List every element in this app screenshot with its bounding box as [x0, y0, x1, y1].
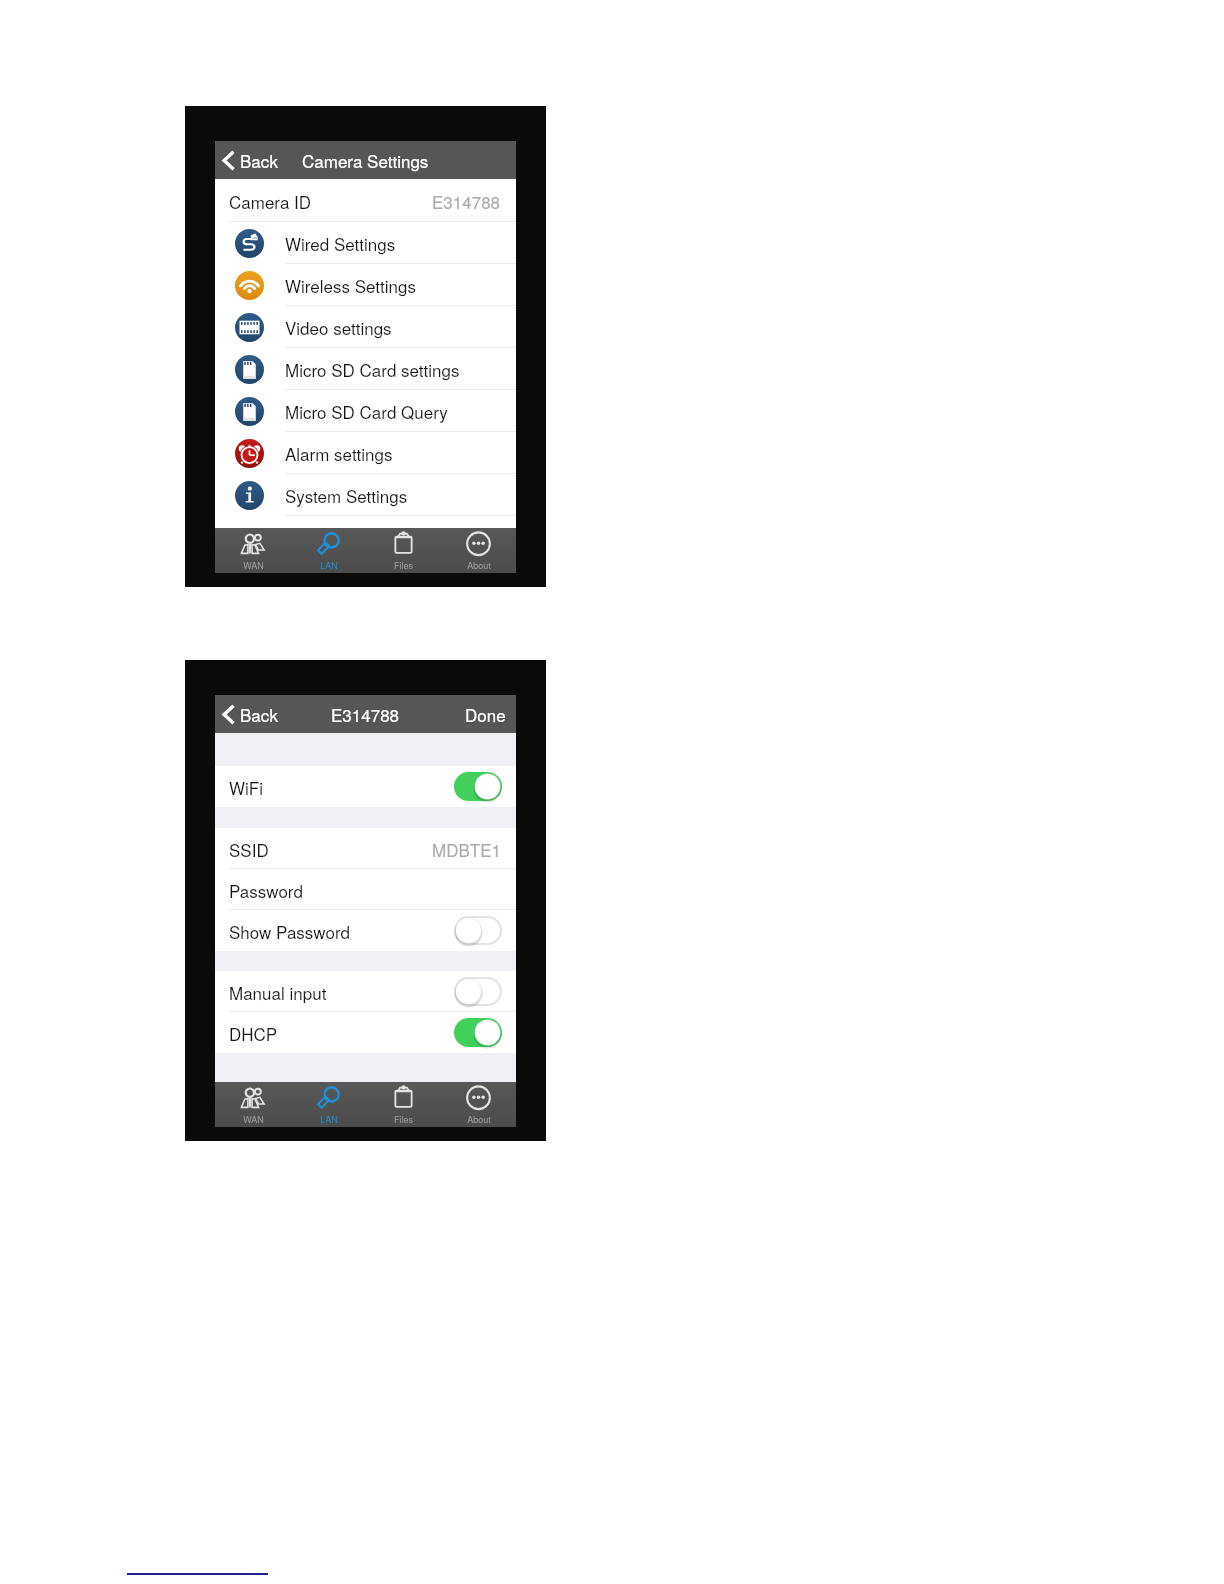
staticText: MDBTE1: [432, 837, 501, 861]
staticText: About: [467, 1113, 491, 1126]
button[interactable]: WAN: [215, 528, 291, 573]
button[interactable]: Video settings: [215, 306, 516, 348]
button[interactable]: Alarm settings: [215, 432, 516, 474]
button[interactable]: About: [441, 528, 516, 573]
staticText: Back: [240, 148, 278, 172]
button[interactable]: LAN: [291, 1082, 366, 1127]
button[interactable]: Done: [455, 696, 516, 732]
staticText: Camera ID: [229, 189, 312, 213]
button[interactable]: SSID: [215, 828, 516, 869]
other: On: [454, 772, 502, 801]
button[interactable]: Manual input: [215, 971, 516, 1012]
staticText: Manual input: [229, 980, 327, 1004]
staticText: Video settings: [285, 315, 392, 339]
button[interactable]: DHCP: [215, 1012, 516, 1053]
staticText: About: [467, 559, 491, 572]
button[interactable]: Back: [215, 697, 286, 731]
button[interactable]: LAN: [291, 528, 366, 573]
other: About: [466, 532, 492, 557]
staticText: WAN: [243, 1113, 264, 1126]
button[interactable]: Back: [215, 143, 286, 177]
staticText: Files: [394, 559, 413, 572]
other: WAN: [240, 532, 266, 557]
button[interactable]: Files: [366, 1082, 441, 1127]
staticText: Back: [240, 702, 278, 726]
staticText: System Settings: [285, 483, 408, 507]
staticText: Alarm settings: [285, 441, 393, 465]
staticText: Files: [394, 1113, 413, 1126]
other: Files: [391, 1086, 417, 1111]
staticText: Micro SD Card settings: [285, 357, 460, 381]
staticText: Done: [465, 702, 506, 726]
staticText: WAN: [243, 559, 264, 572]
staticText: Password: [229, 878, 303, 902]
staticText: Show Password: [229, 919, 351, 943]
other: Files: [391, 532, 417, 557]
other: LAN: [316, 1086, 342, 1111]
button[interactable]: Wireless Settings: [215, 264, 516, 306]
staticText: Micro SD Card Query: [285, 399, 448, 423]
staticText: Camera Settings: [302, 148, 429, 172]
button[interactable]: System Settings: [215, 474, 516, 516]
staticText: LAN: [320, 1113, 338, 1126]
button[interactable]: Wired Settings: [215, 222, 516, 264]
other: LAN: [316, 532, 342, 557]
button[interactable]: WAN: [215, 1082, 291, 1127]
other: Off: [454, 916, 502, 945]
other: WAN: [240, 1086, 266, 1111]
other: Off: [454, 977, 502, 1006]
other: On: [454, 1018, 502, 1047]
button[interactable]: About: [441, 1082, 516, 1127]
button[interactable]: Micro SD Card Query: [215, 390, 516, 432]
button[interactable]: Camera ID: [215, 179, 516, 222]
staticText: DHCP: [229, 1021, 278, 1045]
staticText: Wired Settings: [285, 231, 396, 255]
other: About: [466, 1086, 492, 1111]
staticText: WiFi: [229, 775, 263, 799]
button[interactable]: Files: [366, 528, 441, 573]
button[interactable]: WiFi: [215, 766, 516, 807]
button[interactable]: Password: [215, 869, 516, 910]
button[interactable]: Micro SD Card settings: [215, 348, 516, 390]
staticText: E314788: [331, 702, 400, 726]
staticText: LAN: [320, 559, 338, 572]
staticText: SSID: [229, 837, 269, 861]
staticText: Wireless Settings: [285, 273, 416, 297]
staticText: E314788: [432, 189, 501, 213]
button[interactable]: Show Password: [215, 910, 516, 951]
